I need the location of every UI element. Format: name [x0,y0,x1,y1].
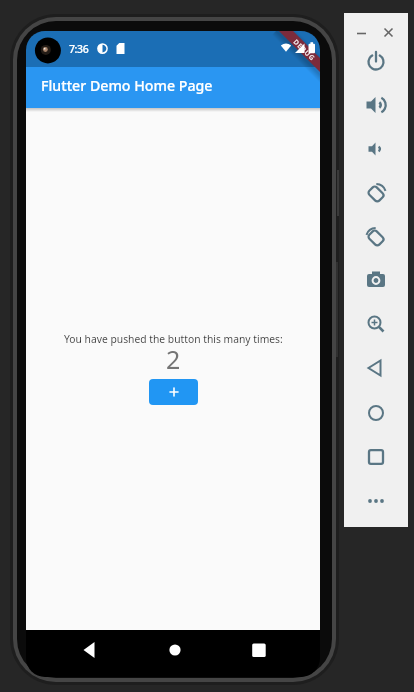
button[interactable] [356,217,396,257]
button[interactable] [356,481,396,521]
button[interactable] [356,393,396,433]
button[interactable] [356,437,396,477]
button[interactable] [239,630,279,670]
button[interactable] [155,630,195,670]
staticText: 2 [166,342,181,376]
button[interactable] [378,18,399,39]
staticText: Flutter Demo Home Page [41,76,213,95]
button[interactable] [356,85,396,125]
button[interactable] [69,630,109,670]
button[interactable] [356,348,396,388]
button[interactable] [356,41,396,81]
button[interactable] [356,260,396,300]
staticText: DEBUG [292,37,318,63]
button[interactable] [351,18,372,39]
button[interactable] [356,304,396,344]
staticText: You have pushed the button this many tim… [64,332,283,346]
button[interactable] [149,379,198,405]
button[interactable] [356,173,396,213]
button[interactable] [356,129,396,169]
staticText: 7:36 [69,42,89,56]
